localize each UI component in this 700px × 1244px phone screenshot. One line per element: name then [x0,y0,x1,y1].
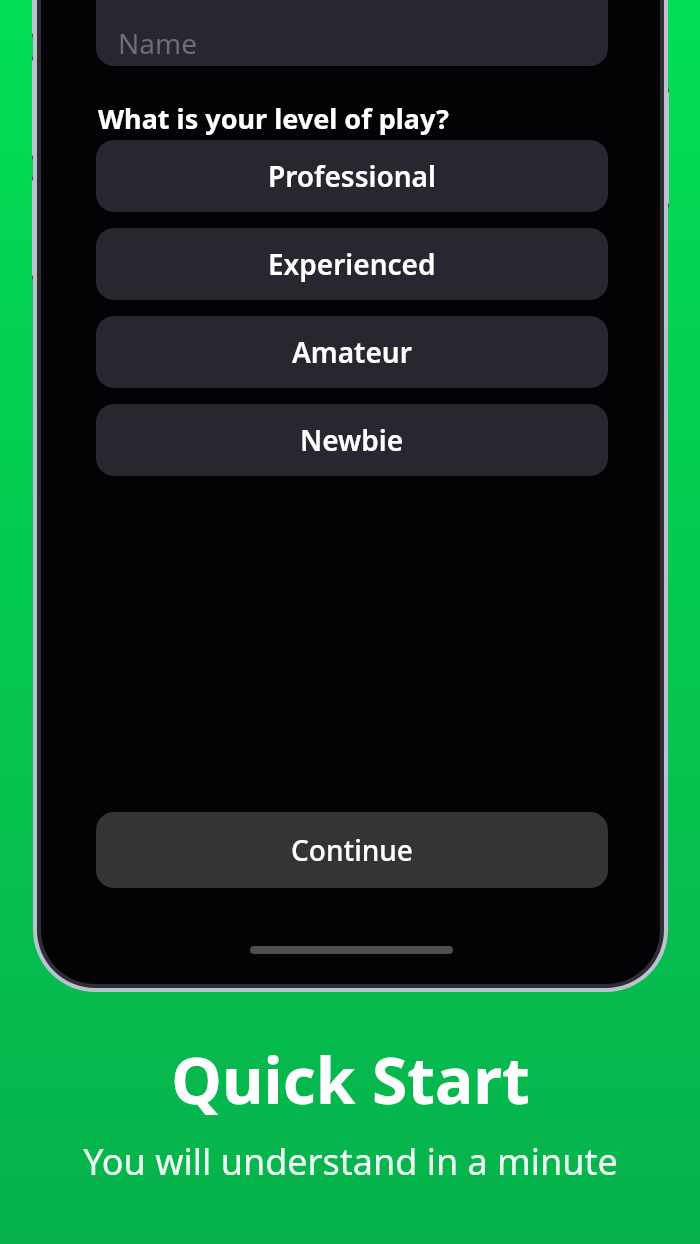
staticText: Experienced [268,245,436,283]
button[interactable]: Newbie [96,404,608,476]
staticText: Professional [268,157,436,195]
button[interactable]: Name input field [96,0,608,66]
staticText: What is your level of play? [98,100,449,137]
staticText: Newbie [300,421,404,459]
button[interactable]: Experienced [96,228,608,300]
staticText: Quick Start [171,1036,530,1123]
button[interactable]: Professional [96,140,608,212]
staticText: You will understand in a minute [83,1137,618,1186]
staticText: Amateur [292,333,412,371]
button[interactable]: Amateur [96,316,608,388]
button[interactable]: Continue [96,812,608,888]
staticText: Name [118,24,197,62]
staticText: Continue [291,831,413,869]
